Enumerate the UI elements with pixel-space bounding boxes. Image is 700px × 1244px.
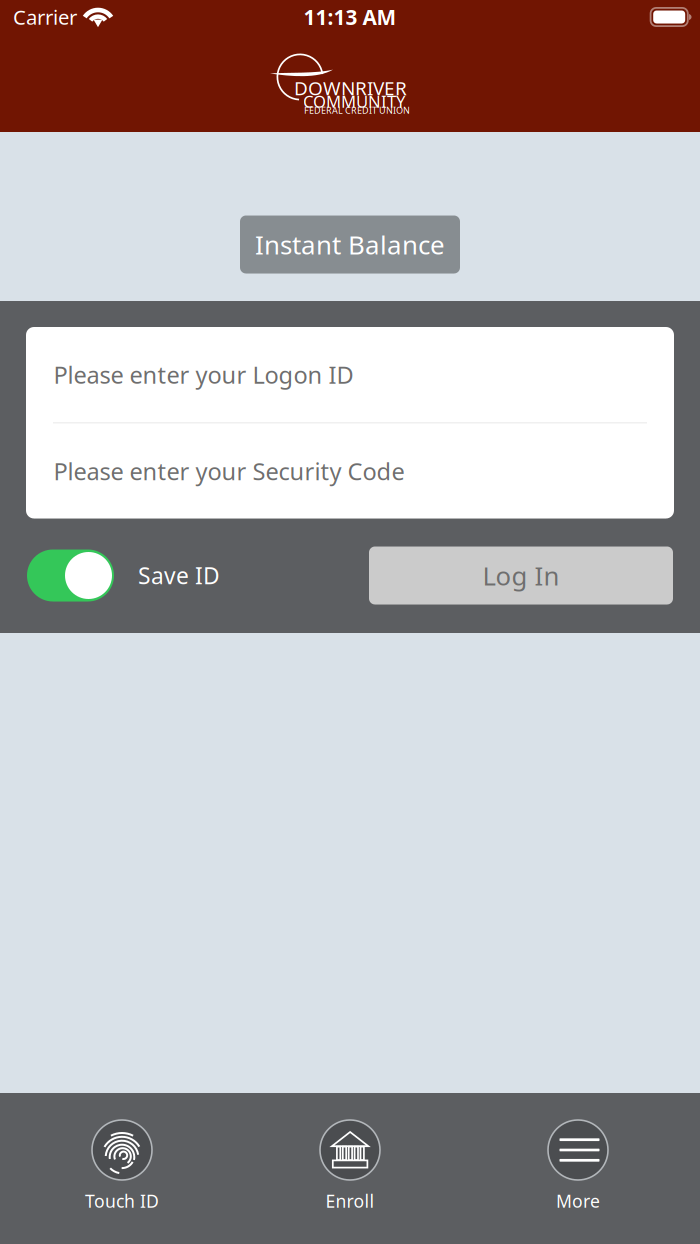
staticText: DOWNRIVER: [294, 75, 407, 101]
staticText: Instant Balance: [255, 227, 445, 262]
button[interactable]: Instant Balance: [240, 215, 460, 273]
button[interactable]: More: [464, 1120, 692, 1213]
staticText: Please enter your Logon ID: [53, 358, 353, 390]
staticText: Log In: [482, 558, 559, 593]
button[interactable]: Log In: [369, 546, 673, 604]
button[interactable]: Touch ID: [8, 1120, 236, 1213]
staticText: Save ID: [138, 560, 220, 591]
button[interactable]: Save ID: [27, 549, 220, 601]
staticText: COMMUNITY: [303, 90, 405, 113]
staticText: 11:13 AM: [303, 3, 396, 31]
button[interactable]: Enroll: [236, 1120, 464, 1213]
staticText: Please enter your Security Code: [53, 455, 404, 487]
staticText: Carrier: [13, 3, 77, 31]
staticText: FEDERAL CREDIT UNION: [304, 104, 410, 116]
staticText: Touch ID: [85, 1189, 159, 1213]
staticText: Enroll: [325, 1189, 374, 1213]
staticText: More: [556, 1189, 600, 1213]
